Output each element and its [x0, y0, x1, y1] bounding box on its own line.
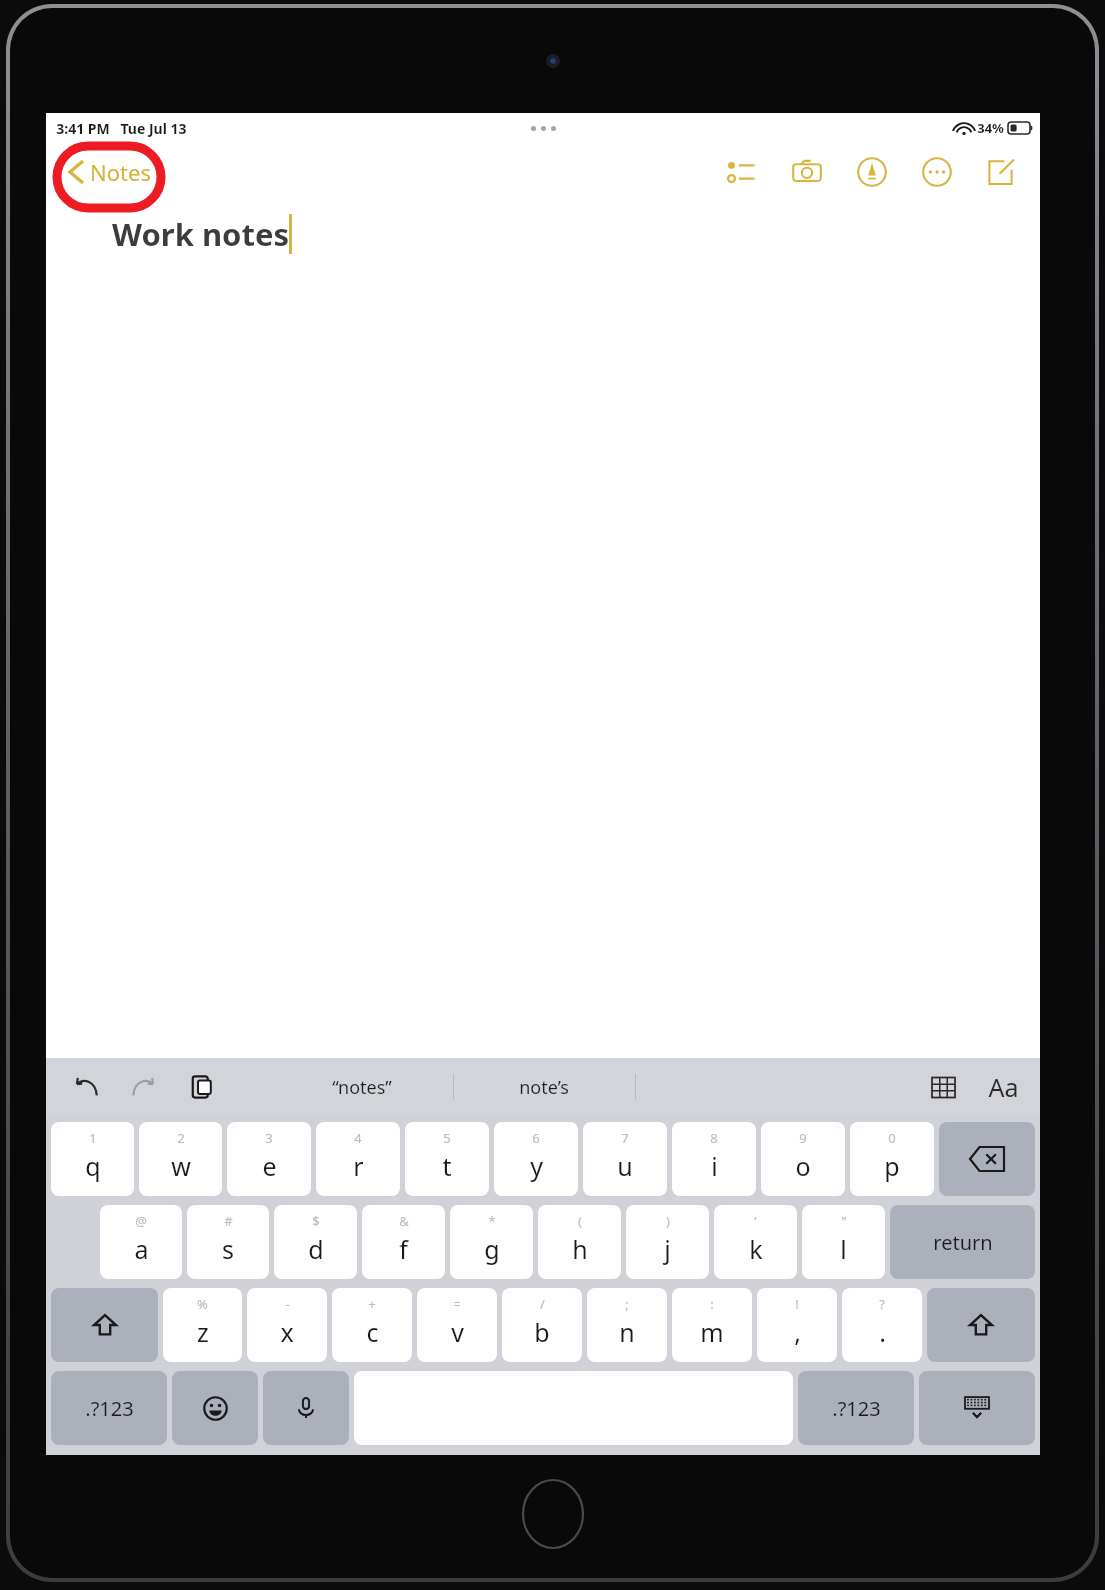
staticText: 3:41 PM — [56, 119, 110, 138]
button[interactable]: 2 — [139, 1122, 222, 1196]
staticText: “notes” — [332, 1075, 392, 1100]
button[interactable]: Emoji — [172, 1371, 258, 1445]
staticText: " — [841, 1212, 847, 1230]
staticText: ! — [795, 1295, 799, 1313]
button[interactable]: note’s — [453, 1058, 635, 1116]
staticText: & — [399, 1212, 409, 1230]
button[interactable]: ; — [587, 1288, 667, 1362]
staticText: 4 — [354, 1129, 362, 1147]
button[interactable]: ! — [757, 1288, 837, 1362]
staticText: i — [711, 1149, 718, 1183]
button[interactable]: ’ — [714, 1205, 797, 1279]
button[interactable]: Table — [924, 1068, 962, 1106]
staticText: . — [879, 1315, 886, 1349]
button[interactable]: Format — [984, 1068, 1022, 1106]
button[interactable]: Backspace — [939, 1122, 1035, 1196]
button[interactable]: + — [332, 1288, 412, 1362]
button[interactable]: Markup — [852, 152, 892, 192]
staticText: y — [530, 1149, 543, 1183]
button[interactable]: ( — [538, 1205, 621, 1279]
staticText: .?123 — [832, 1395, 881, 1422]
staticText: Tue Jul 13 — [120, 119, 187, 138]
staticText: p — [884, 1149, 900, 1183]
button[interactable]: $ — [274, 1205, 357, 1279]
button[interactable]: " — [802, 1205, 885, 1279]
button[interactable]: ? — [842, 1288, 922, 1362]
button[interactable]: 1 — [51, 1122, 134, 1196]
staticText: s — [222, 1232, 234, 1266]
button[interactable]: Checklist — [722, 152, 762, 192]
staticText: e — [262, 1149, 277, 1183]
staticText: g — [484, 1232, 500, 1266]
staticText: w — [171, 1149, 191, 1183]
staticText: f — [399, 1232, 408, 1266]
staticText: - — [285, 1295, 290, 1313]
staticText: Work notes — [112, 213, 289, 255]
button[interactable]: Camera — [787, 152, 827, 192]
button[interactable]: 6 — [494, 1122, 578, 1196]
button[interactable]: 9 — [761, 1122, 845, 1196]
staticText: q — [85, 1149, 101, 1183]
button[interactable]: % — [163, 1288, 242, 1362]
staticText: v — [451, 1315, 464, 1349]
staticText: 5 — [443, 1129, 451, 1147]
button[interactable]: 8 — [672, 1122, 756, 1196]
staticText: d — [308, 1232, 324, 1266]
staticText: * — [488, 1212, 496, 1230]
staticText: m — [700, 1315, 724, 1349]
button[interactable]: 3 — [227, 1122, 311, 1196]
staticText: ) — [666, 1212, 670, 1230]
button[interactable]: Hide keyboard — [919, 1371, 1035, 1445]
staticText: h — [572, 1232, 588, 1266]
button[interactable]: * — [450, 1205, 533, 1279]
staticText: 3 — [265, 1129, 273, 1147]
staticText: 8 — [710, 1129, 718, 1147]
staticText: @ — [135, 1212, 147, 1230]
button[interactable]: Compose — [982, 152, 1022, 192]
button[interactable]: : — [672, 1288, 752, 1362]
staticText: 9 — [799, 1129, 807, 1147]
staticText: o — [795, 1149, 811, 1183]
staticText: 34% — [977, 119, 1004, 137]
staticText: l — [840, 1232, 847, 1266]
button[interactable]: @ — [100, 1205, 182, 1279]
staticText: + — [368, 1295, 376, 1313]
button[interactable]: Numbers — [798, 1371, 914, 1445]
button[interactable]: ) — [626, 1205, 709, 1279]
button[interactable]: Undo — [68, 1069, 104, 1105]
staticText: ? — [879, 1295, 885, 1313]
button[interactable]: = — [417, 1288, 497, 1362]
staticText: : — [710, 1295, 714, 1313]
button[interactable]: Return — [890, 1205, 1035, 1279]
staticText: .?123 — [85, 1395, 134, 1422]
button[interactable]: Shift — [927, 1288, 1035, 1362]
staticText: return — [933, 1229, 993, 1256]
staticText: note’s — [519, 1075, 569, 1100]
button[interactable]: 7 — [583, 1122, 667, 1196]
button[interactable]: 0 — [850, 1122, 934, 1196]
button[interactable]: # — [187, 1205, 269, 1279]
button[interactable]: 5 — [405, 1122, 489, 1196]
button[interactable]: Redo — [126, 1069, 162, 1105]
button[interactable]: - — [247, 1288, 327, 1362]
staticText: / — [540, 1295, 545, 1313]
staticText: $ — [312, 1212, 320, 1230]
button[interactable]: Notes — [64, 151, 157, 193]
staticText: x — [280, 1315, 294, 1349]
staticText: ; — [625, 1295, 629, 1313]
button[interactable]: Paste — [184, 1069, 220, 1105]
button[interactable]: & — [362, 1205, 445, 1279]
button[interactable]: 4 — [316, 1122, 400, 1196]
button[interactable]: More — [917, 152, 957, 192]
button[interactable]: Numbers — [51, 1371, 167, 1445]
button[interactable]: / — [502, 1288, 582, 1362]
button[interactable]: Dictation — [263, 1371, 349, 1445]
staticText: z — [197, 1315, 209, 1349]
button[interactable]: Shift — [51, 1288, 158, 1362]
button[interactable]: “notes” — [270, 1058, 453, 1116]
staticText: k — [749, 1232, 763, 1266]
staticText: r — [353, 1149, 364, 1183]
staticText: ( — [578, 1212, 582, 1230]
